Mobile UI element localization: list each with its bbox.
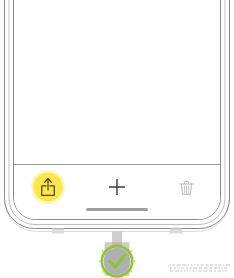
button[interactable]: Share xyxy=(31,170,65,204)
other: Verified xyxy=(95,240,139,278)
button[interactable]: Delete xyxy=(171,172,201,202)
button[interactable]: Add xyxy=(102,172,132,202)
